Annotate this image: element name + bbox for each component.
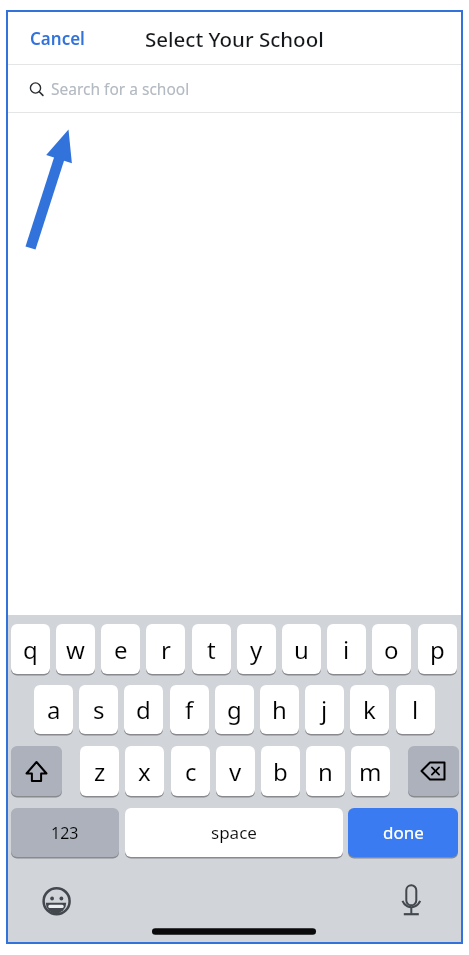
staticText: a: [47, 693, 61, 726]
button[interactable]: s: [79, 685, 118, 734]
button[interactable]: Cancel: [30, 27, 85, 50]
staticText: Cancel: [30, 27, 85, 50]
button[interactable]: j: [305, 685, 344, 734]
button[interactable]: y: [237, 624, 276, 674]
button[interactable]: f: [170, 685, 209, 734]
button[interactable]: u: [282, 624, 321, 674]
staticText: space: [211, 821, 257, 844]
staticText: u: [294, 633, 309, 666]
button[interactable]: w: [56, 624, 95, 674]
button[interactable]: 123: [11, 808, 119, 857]
button[interactable]: [42, 887, 71, 916]
button[interactable]: [397, 884, 426, 916]
staticText: w: [66, 633, 85, 666]
staticText: Search for a school: [51, 78, 190, 99]
button[interactable]: x: [125, 746, 164, 796]
staticText: b: [273, 755, 288, 788]
button[interactable]: done: [348, 808, 458, 857]
staticText: c: [185, 755, 197, 788]
button[interactable]: Search for a school: [8, 65, 461, 112]
button[interactable]: b: [261, 746, 300, 796]
staticText: s: [93, 693, 105, 726]
staticText: y: [250, 633, 263, 666]
staticText: m: [359, 755, 382, 788]
staticText: x: [138, 755, 151, 788]
staticText: Select Your School: [145, 25, 324, 53]
button[interactable]: e: [101, 624, 140, 674]
staticText: r: [161, 633, 171, 666]
staticText: q: [23, 633, 38, 666]
staticText: d: [136, 693, 151, 726]
staticText: f: [185, 693, 194, 726]
staticText: t: [207, 633, 216, 666]
staticText: p: [430, 633, 445, 666]
button[interactable]: [11, 746, 62, 796]
button[interactable]: t: [192, 624, 231, 674]
button[interactable]: m: [351, 746, 390, 796]
staticText: g: [227, 693, 242, 726]
staticText: j: [321, 693, 328, 726]
button[interactable]: n: [306, 746, 345, 796]
staticText: e: [114, 633, 128, 666]
staticText: k: [363, 693, 376, 726]
staticText: i: [343, 633, 350, 666]
button[interactable]: i: [327, 624, 366, 674]
button[interactable]: c: [171, 746, 210, 796]
staticText: done: [383, 821, 424, 844]
button[interactable]: space: [125, 808, 343, 857]
staticText: h: [272, 693, 287, 726]
button[interactable]: a: [34, 685, 73, 734]
button[interactable]: o: [372, 624, 411, 674]
button[interactable]: q: [11, 624, 50, 674]
staticText: v: [229, 755, 242, 788]
staticText: l: [412, 693, 419, 726]
staticText: o: [384, 633, 399, 666]
staticText: z: [94, 755, 106, 788]
button[interactable]: d: [124, 685, 163, 734]
button[interactable]: [408, 746, 459, 796]
button[interactable]: p: [418, 624, 457, 674]
staticText: n: [318, 755, 333, 788]
button[interactable]: l: [396, 685, 435, 734]
button[interactable]: h: [260, 685, 299, 734]
button[interactable]: v: [216, 746, 255, 796]
button[interactable]: g: [215, 685, 254, 734]
button[interactable]: z: [80, 746, 119, 796]
button[interactable]: r: [146, 624, 185, 674]
staticText: 123: [51, 822, 79, 844]
button[interactable]: k: [350, 685, 389, 734]
